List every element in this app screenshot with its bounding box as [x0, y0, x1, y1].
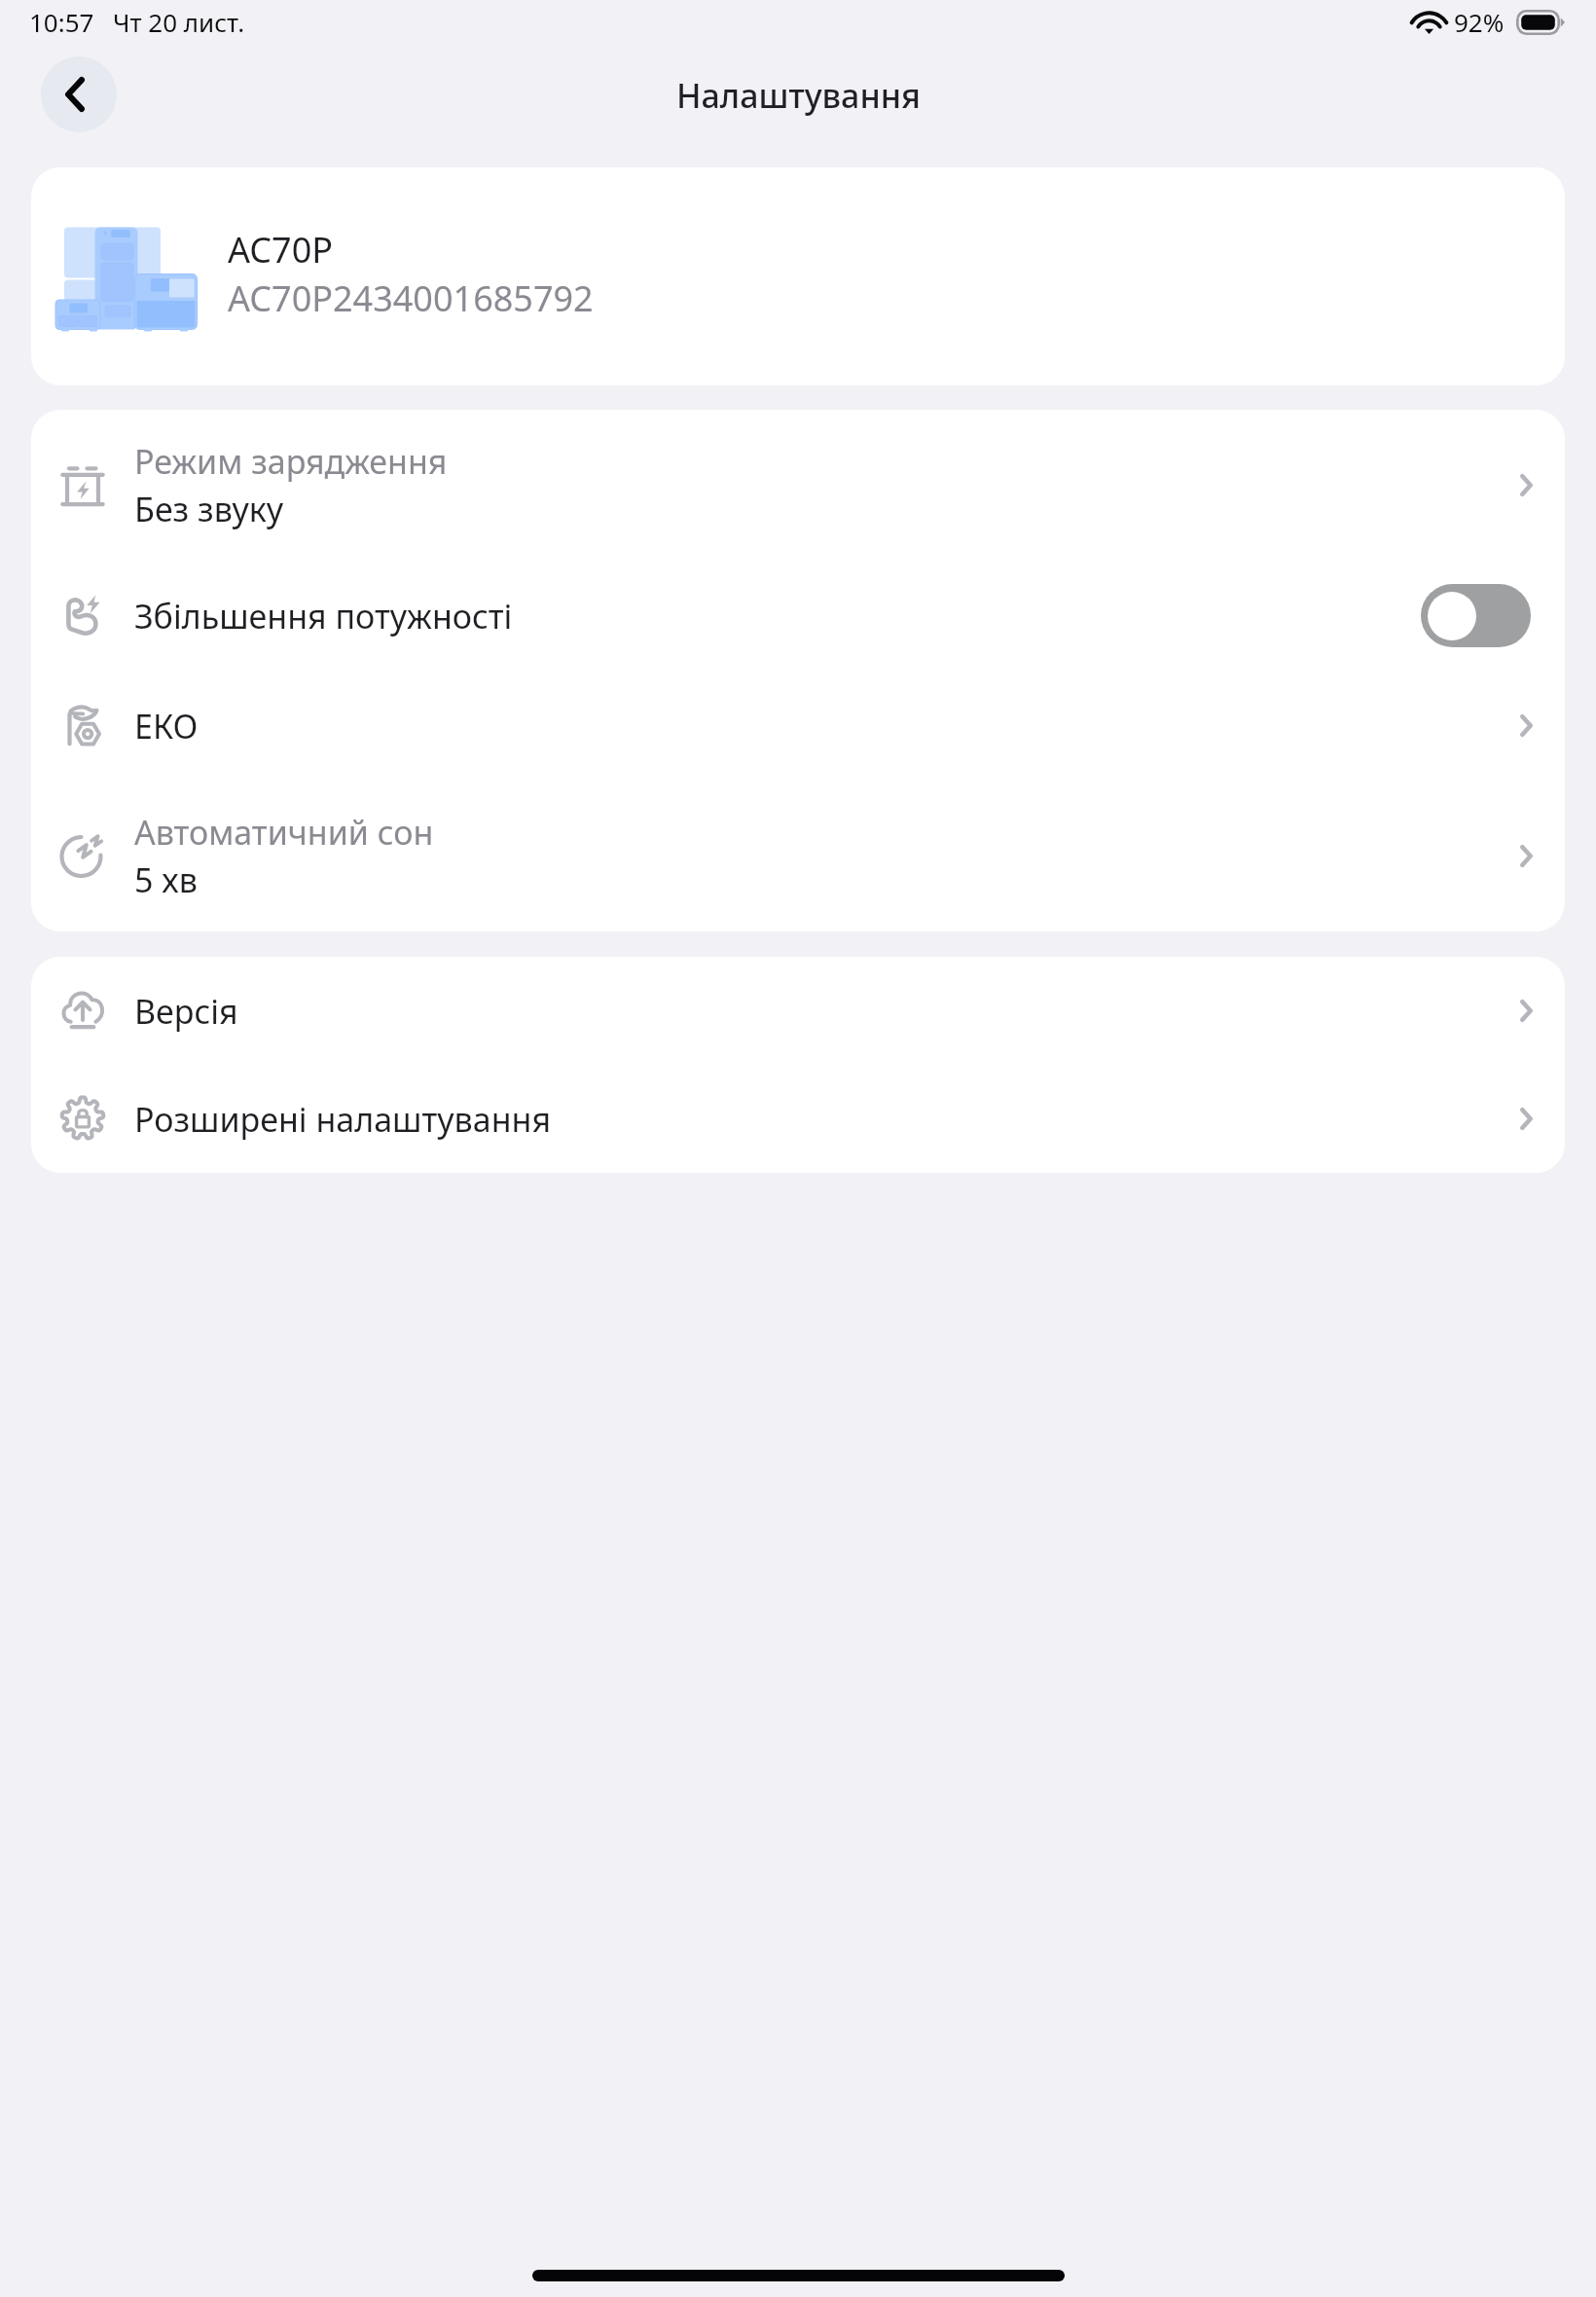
button[interactable]: Режим зарядження: [31, 410, 1565, 561]
staticText: AC70P2434001685792: [228, 274, 594, 322]
staticText: Версія: [134, 989, 1488, 1034]
button[interactable]: Збільшення потужності: [31, 561, 1565, 671]
button[interactable]: ЕКО: [31, 671, 1565, 781]
staticText: Чт 20 лист.: [113, 5, 245, 39]
staticText: AC70P: [228, 226, 334, 273]
staticText: Режим зарядження: [134, 439, 448, 484]
staticText: Розширені налаштування: [134, 1097, 1488, 1142]
button[interactable]: Power boost toggle: [1421, 584, 1531, 647]
button[interactable]: Розширені налаштування: [31, 1065, 1565, 1173]
button[interactable]: Back: [41, 56, 117, 132]
staticText: 10:57: [29, 5, 94, 39]
button[interactable]: Автоматичний сон: [31, 781, 1565, 931]
button[interactable]: Версія: [31, 957, 1565, 1065]
staticText: 92%: [1454, 5, 1505, 39]
staticText: Збільшення потужності: [134, 594, 1421, 638]
staticText: Налаштування: [676, 73, 921, 118]
staticText: ЕКО: [134, 704, 1488, 748]
staticText: 5 хв: [134, 857, 198, 902]
staticText: Без звуку: [134, 487, 284, 531]
staticText: Автоматичний сон: [134, 810, 434, 855]
button[interactable]: AC70P: [31, 167, 1565, 385]
